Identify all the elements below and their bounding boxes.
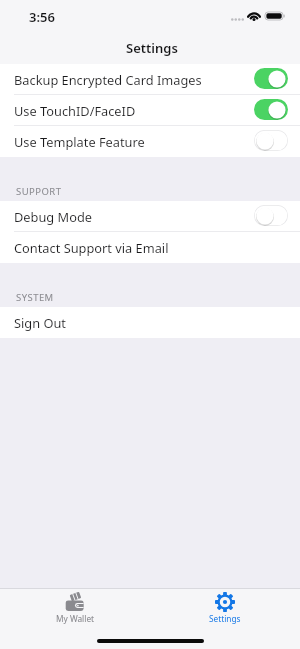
staticText: 3:56 <box>29 8 55 26</box>
button[interactable]: Sign Out <box>0 307 300 338</box>
staticText: SUPPORT <box>16 185 62 198</box>
staticText: Debug Mode <box>14 208 92 225</box>
staticText: Use TouchID/FaceID <box>14 102 136 119</box>
button[interactable]: Debug Mode, off <box>254 205 288 226</box>
button[interactable]: Use TouchID/FaceID <box>0 95 300 126</box>
staticText: Contact Support via Email <box>14 239 169 256</box>
button[interactable]: Contact Support via Email <box>0 232 300 263</box>
button[interactable]: Debug Mode <box>0 201 300 232</box>
button[interactable]: Backup Encrypted Card Images, on <box>254 68 288 89</box>
staticText: My Wallet <box>56 613 95 624</box>
staticText: Backup Encrypted Card Images <box>14 71 202 88</box>
button[interactable]: Use Template Feature <box>0 126 300 157</box>
button[interactable]: Backup Encrypted Card Images <box>0 64 300 95</box>
staticText: SYSTEM <box>16 291 54 304</box>
staticText: Use Template Feature <box>14 133 145 150</box>
staticText: Settings <box>209 613 241 624</box>
staticText: Settings <box>126 39 178 57</box>
button[interactable]: Settings <box>150 588 300 649</box>
button[interactable]: Use Template Feature, off <box>254 130 288 151</box>
button[interactable]: My Wallet <box>0 588 150 649</box>
staticText: Sign Out <box>14 314 66 331</box>
button[interactable]: Use TouchID/FaceID, on <box>254 99 288 120</box>
